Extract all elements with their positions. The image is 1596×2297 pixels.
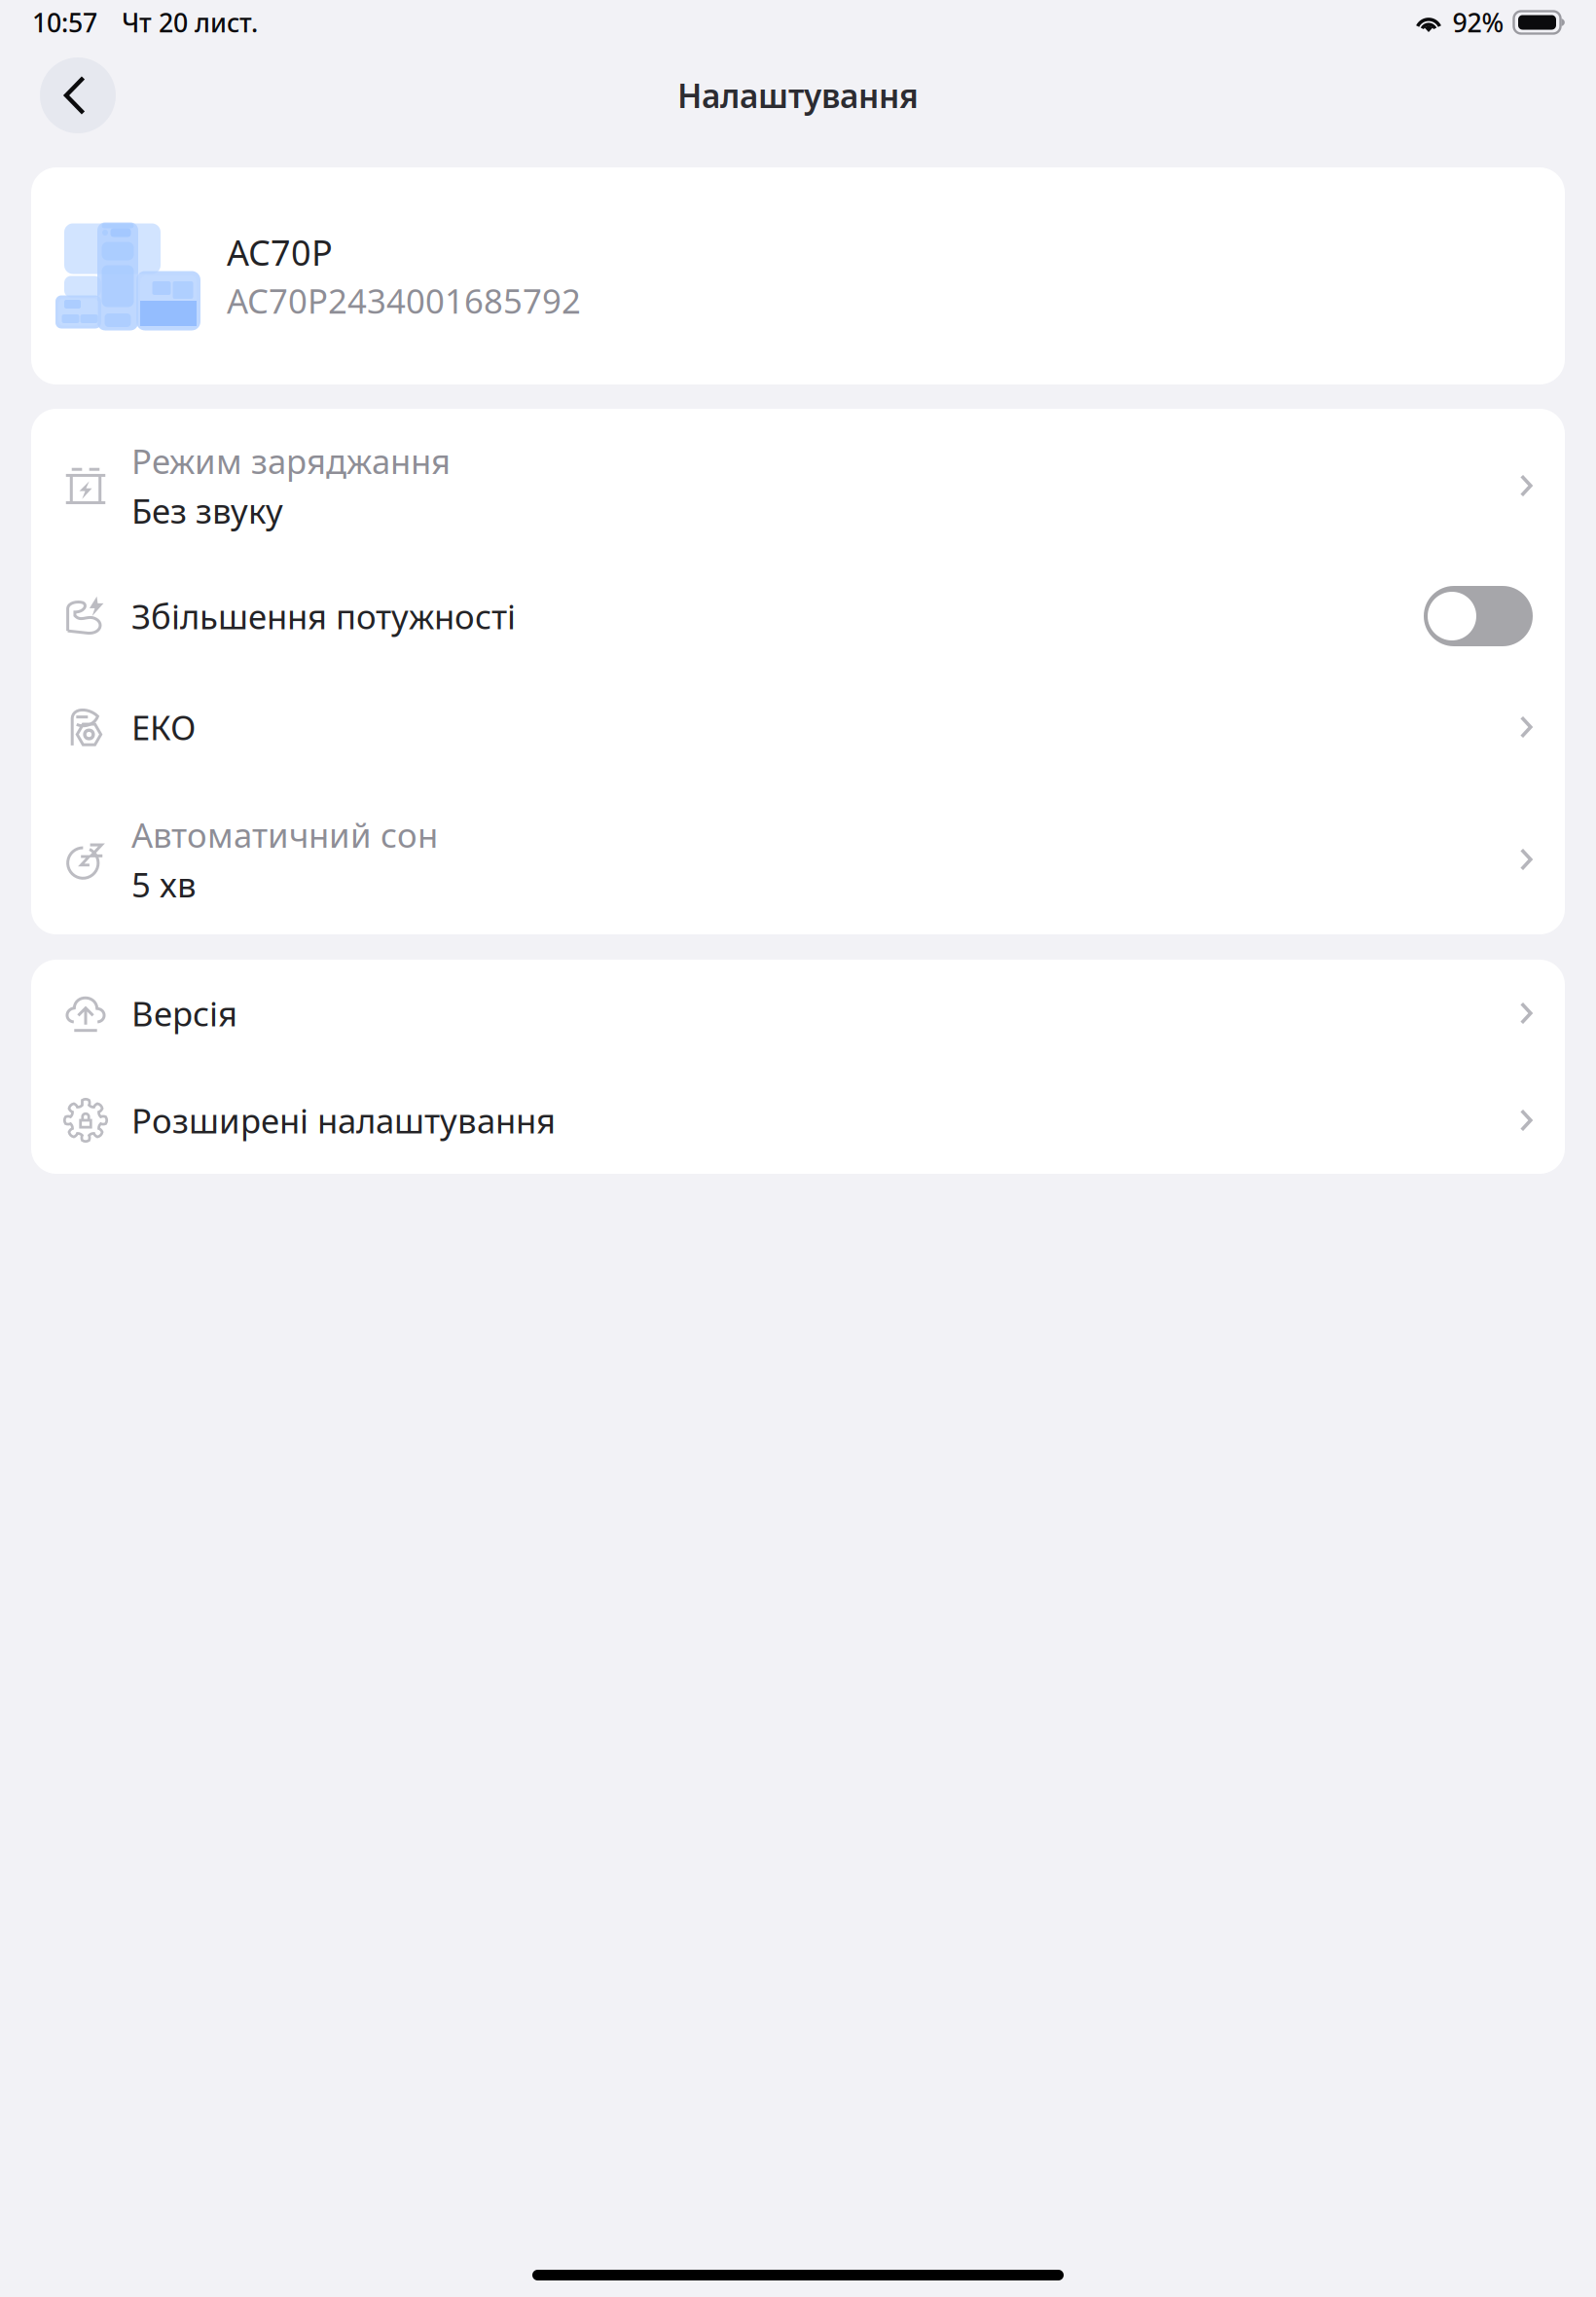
button[interactable]: Збільшення потужності: [31, 563, 1565, 670]
staticText: Без звуку: [131, 488, 283, 533]
staticText: Збільшення потужності: [131, 594, 516, 638]
staticText: AC70P2434001685792: [227, 278, 581, 323]
button[interactable]: Автоматичний сон: [31, 784, 1565, 934]
button[interactable]: Режим заряджання: [31, 409, 1565, 563]
staticText: Версія: [131, 991, 237, 1036]
staticText: 5 хв: [131, 862, 197, 907]
staticText: Налаштування: [677, 74, 919, 117]
button[interactable]: ЕКО: [31, 670, 1565, 784]
staticText: AC70P: [227, 229, 333, 275]
staticText: 10:57: [32, 5, 97, 40]
staticText: Чт 20 лист.: [122, 5, 258, 40]
staticText: Режим заряджання: [131, 438, 451, 483]
button[interactable]: Back: [40, 57, 116, 133]
button[interactable]: Версія: [31, 960, 1565, 1067]
staticText: Розширені налаштування: [131, 1098, 556, 1143]
staticText: ЕКО: [131, 705, 196, 749]
button[interactable]: AC70P: [31, 167, 1565, 384]
button[interactable]: Розширені налаштування: [31, 1067, 1565, 1174]
staticText: Автоматичний сон: [131, 812, 438, 857]
staticText: 92%: [1452, 5, 1504, 40]
